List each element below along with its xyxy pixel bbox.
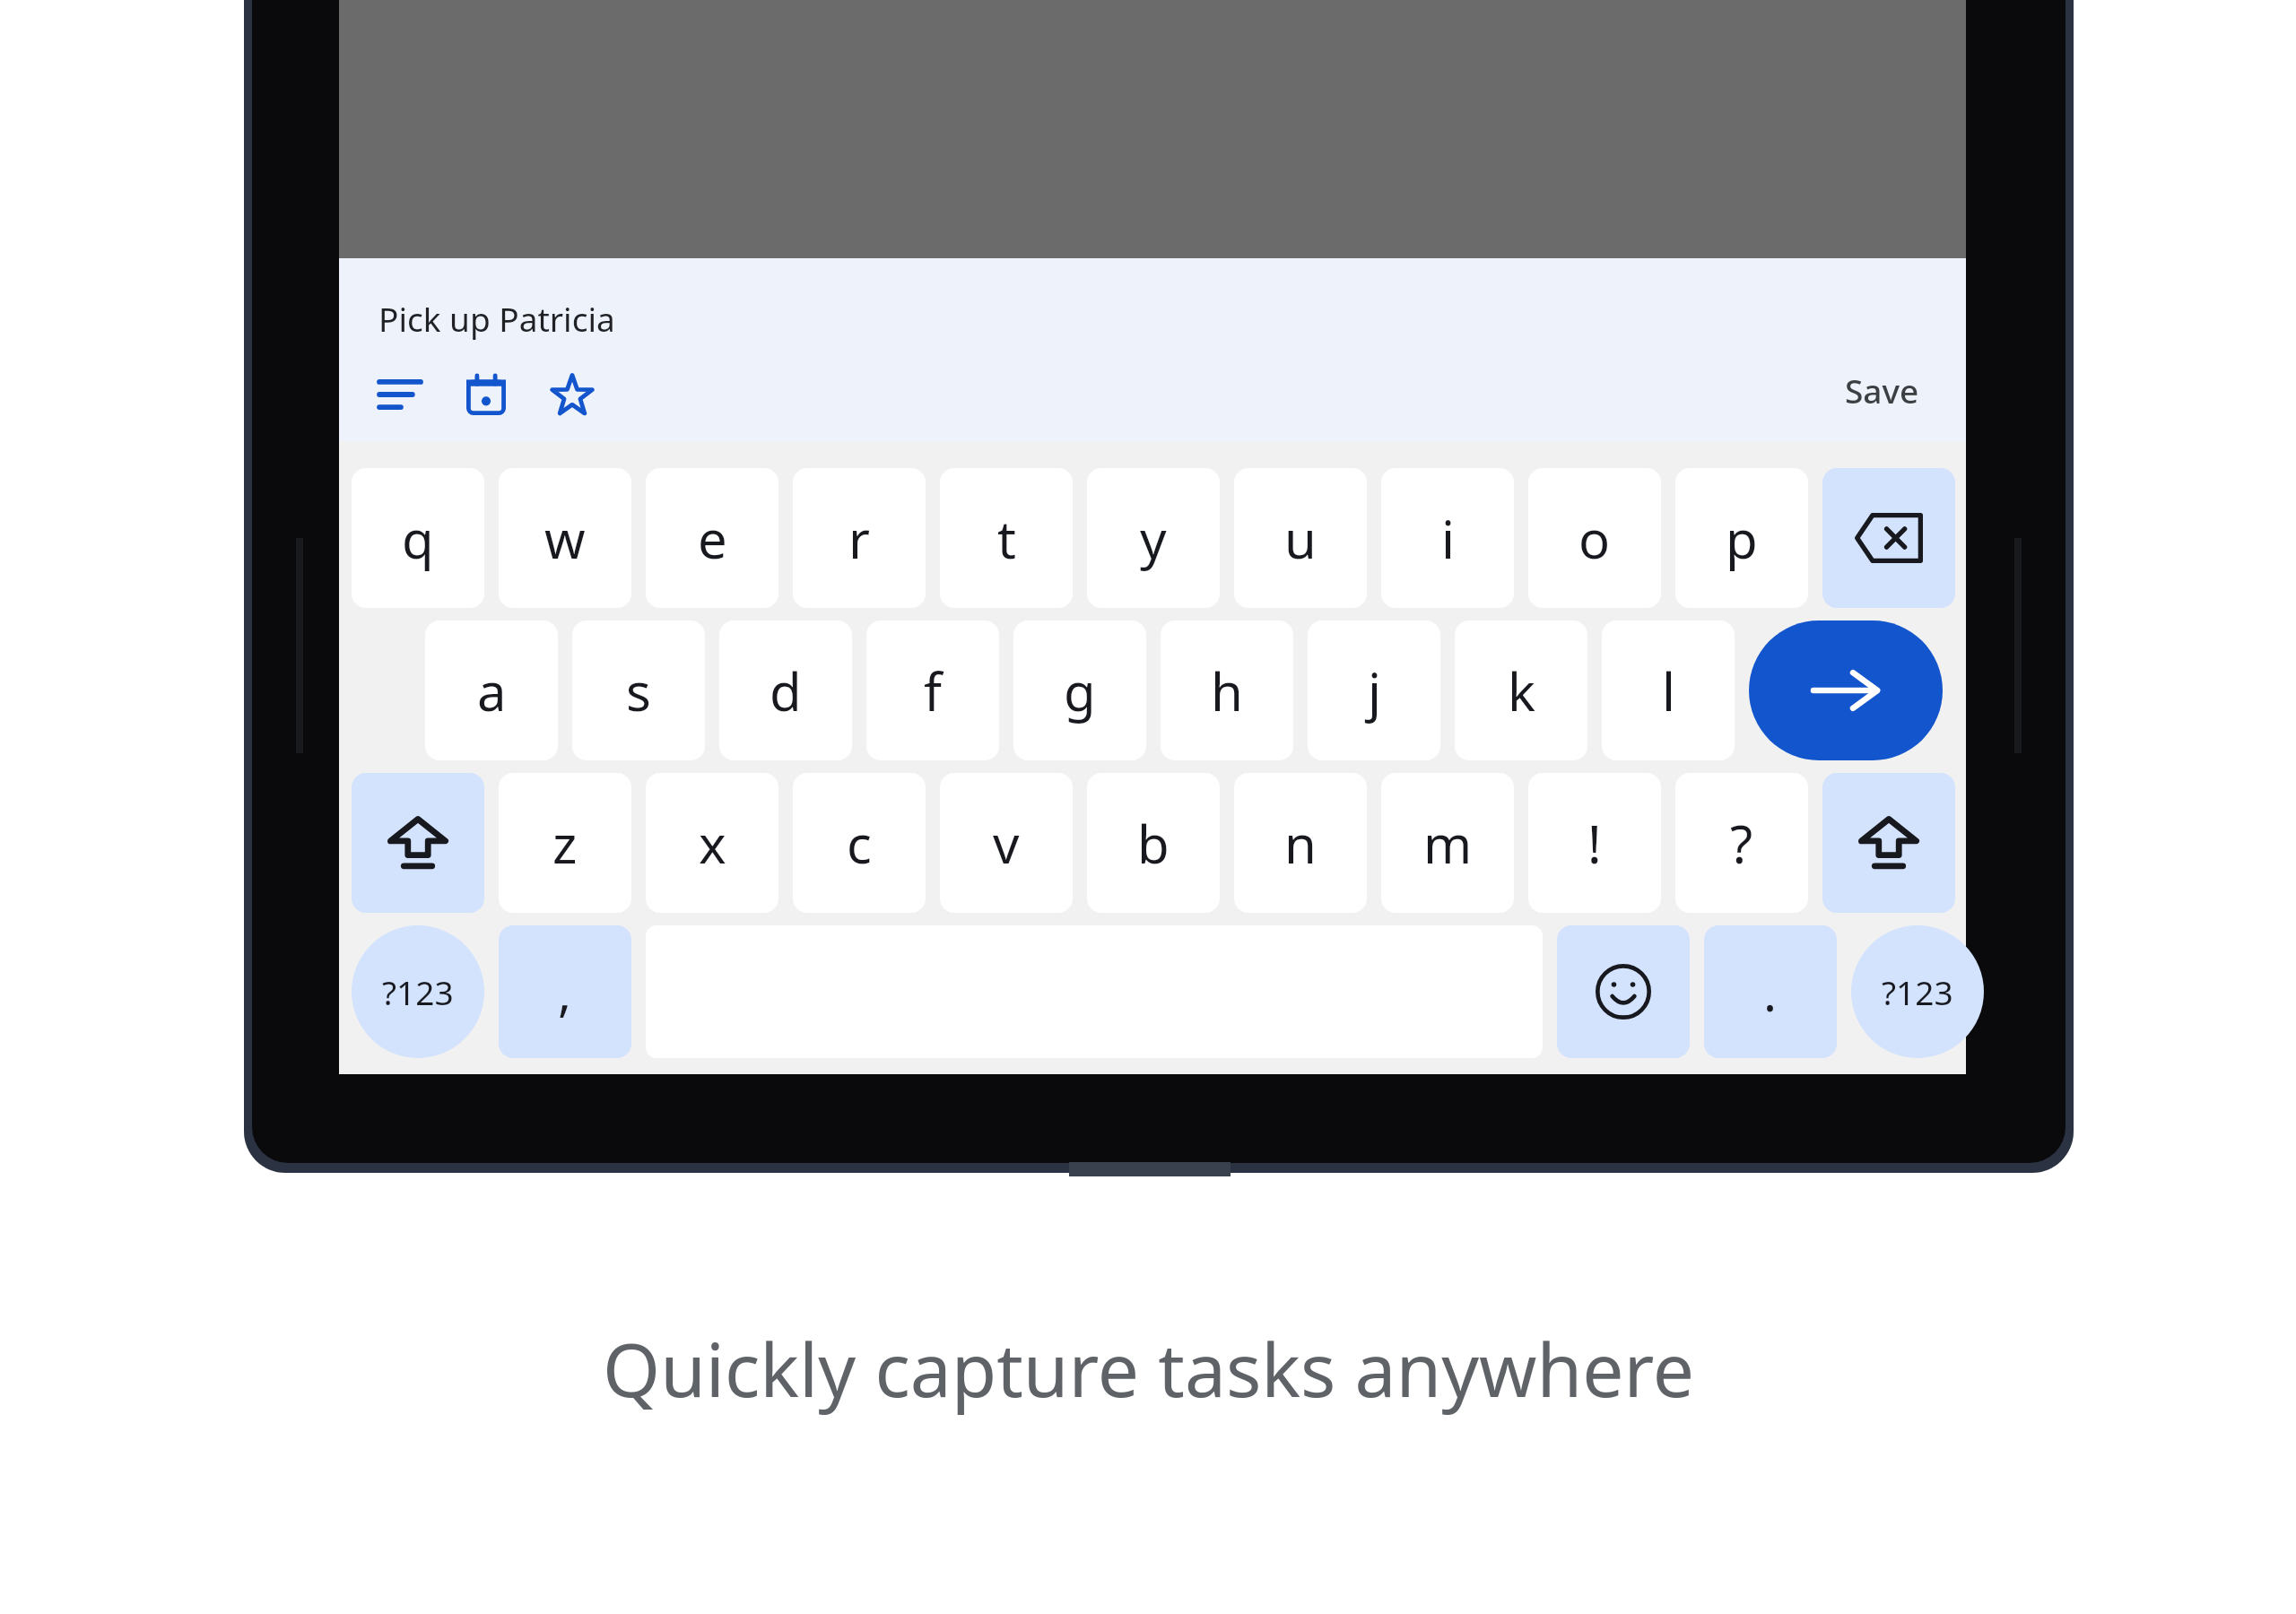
button[interactable]: Comma [499, 925, 631, 1058]
button[interactable]: Backspace [1822, 468, 1955, 608]
button[interactable]: Emoji [1557, 925, 1690, 1058]
staticText: o [1578, 503, 1611, 574]
button[interactable]: ! [1528, 773, 1661, 913]
staticText: s [626, 655, 651, 726]
staticText: b [1137, 808, 1170, 879]
staticText: ! [1587, 808, 1602, 879]
button[interactable]: f [866, 620, 999, 760]
button[interactable]: m [1381, 773, 1514, 913]
button[interactable]: k [1455, 620, 1587, 760]
button[interactable]: b [1087, 773, 1220, 913]
staticText: x [699, 808, 726, 879]
button[interactable]: l [1602, 620, 1735, 760]
button[interactable]: Enter [1749, 620, 1943, 760]
button[interactable]: d [719, 620, 852, 760]
button[interactable]: t [940, 468, 1073, 608]
staticText: h [1211, 655, 1243, 726]
staticText: l [1662, 655, 1675, 726]
button[interactable]: a [425, 620, 558, 760]
button[interactable]: n [1234, 773, 1367, 913]
button[interactable]: Shift [352, 773, 484, 913]
staticText: e [698, 503, 727, 574]
button[interactable]: Period [1704, 925, 1837, 1058]
button[interactable]: ?123 [1851, 925, 1984, 1058]
button[interactable]: Set date [448, 357, 524, 432]
staticText: ? [1730, 808, 1753, 879]
staticText: d [770, 655, 802, 726]
button[interactable]: Add details [362, 357, 438, 432]
button[interactable]: ? [1675, 773, 1808, 913]
button[interactable]: ?123 [352, 925, 484, 1058]
button[interactable]: g [1013, 620, 1146, 760]
staticText: ?123 [382, 969, 454, 1014]
button[interactable]: w [499, 468, 631, 608]
staticText: , [558, 958, 572, 1026]
staticText: w [544, 503, 586, 574]
staticText: Pick up Patricia [378, 296, 615, 341]
button[interactable]: s [572, 620, 705, 760]
staticText: j [1368, 655, 1381, 726]
staticText: p [1726, 503, 1758, 574]
button[interactable]: u [1234, 468, 1367, 608]
staticText: c [847, 808, 872, 879]
button[interactable]: c [793, 773, 926, 913]
staticText: Quickly capture tasks anywhere [603, 1318, 1694, 1419]
button[interactable]: j [1308, 620, 1440, 760]
button[interactable]: i [1381, 468, 1514, 608]
staticText: n [1284, 808, 1317, 879]
button[interactable]: o [1528, 468, 1661, 608]
button[interactable]: y [1087, 468, 1220, 608]
staticText: m [1423, 808, 1473, 879]
button[interactable]: v [940, 773, 1073, 913]
staticText: f [924, 655, 942, 726]
staticText: t [997, 503, 1016, 574]
button[interactable]: Shift [1822, 773, 1955, 913]
button[interactable]: Star task [535, 357, 610, 432]
button[interactable]: Save [1825, 355, 1939, 425]
button[interactable]: q [352, 468, 484, 608]
button[interactable]: p [1675, 468, 1808, 608]
button[interactable]: e [646, 468, 778, 608]
staticText: . [1763, 958, 1778, 1026]
staticText: k [1508, 655, 1535, 726]
staticText: a [477, 655, 507, 726]
staticText: u [1284, 503, 1317, 574]
button[interactable]: x [646, 773, 778, 913]
staticText: r [848, 503, 870, 574]
staticText: v [993, 808, 1020, 879]
staticText: g [1064, 655, 1096, 726]
staticText: Save [1845, 368, 1919, 412]
staticText: q [402, 503, 434, 574]
staticText: z [552, 808, 578, 879]
staticText: i [1441, 503, 1455, 574]
button[interactable]: h [1161, 620, 1293, 760]
staticText: ?123 [1882, 969, 1953, 1014]
button[interactable]: r [793, 468, 926, 608]
button[interactable]: z [499, 773, 631, 913]
staticText: y [1140, 503, 1167, 574]
